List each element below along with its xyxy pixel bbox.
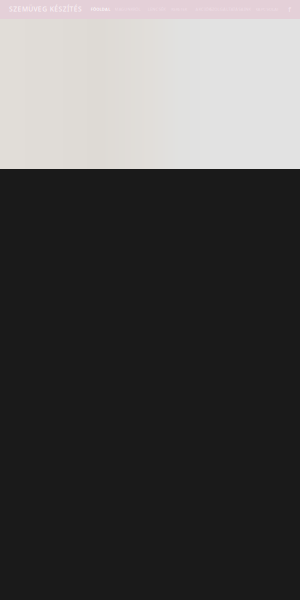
- staticText: SZEMÜVEG KÉSZÍTÉS: [9, 4, 82, 13]
- staticText: f: [288, 5, 291, 14]
- button[interactable]: FŐOLDAL: [89, 0, 113, 19]
- staticText: FŐOLDAL: [91, 6, 110, 12]
- button[interactable]: SZEMÜVEG KÉSZÍTÉS: [0, 0, 91, 18]
